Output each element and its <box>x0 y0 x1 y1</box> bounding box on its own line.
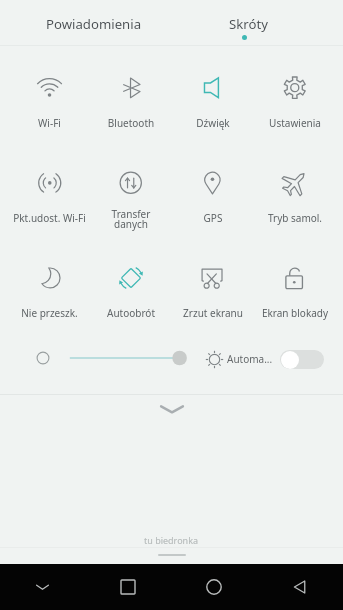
staticText: GPS <box>172 211 254 225</box>
button[interactable]: Zrzut ekranu <box>172 246 254 341</box>
button[interactable]: Nie przeszk. <box>9 246 90 341</box>
button[interactable]: Hide <box>0 564 85 610</box>
button[interactable]: Recents <box>85 564 171 610</box>
button[interactable]: Wi-Fi <box>9 56 90 151</box>
staticText: Zrzut ekranu <box>172 306 254 320</box>
button[interactable]: Pkt.udost. Wi-Fi <box>9 151 90 246</box>
staticText: Pkt.udost. Wi-Fi <box>9 211 90 225</box>
staticText: Ustawienia <box>254 116 336 130</box>
staticText: Bluetooth <box>90 116 172 130</box>
button[interactable]: Skróty <box>162 0 334 45</box>
button[interactable]: Automa... <box>204 344 324 374</box>
staticText: Autoobrót <box>90 306 172 320</box>
staticText: Skróty <box>229 15 268 33</box>
button[interactable]: GPS <box>172 151 254 246</box>
button[interactable]: Bluetooth <box>90 56 172 151</box>
staticText: Nie przeszk. <box>9 306 90 320</box>
button[interactable]: Back <box>257 564 343 610</box>
staticText: Wi-Fi <box>9 116 90 130</box>
button[interactable]: Ustawienia <box>254 56 336 151</box>
staticText: Powiadomienia <box>46 15 142 33</box>
button[interactable]: Brightness <box>30 344 192 372</box>
button[interactable]: Autoobrót <box>90 246 172 341</box>
button[interactable]: Powiadomienia <box>8 0 180 45</box>
button[interactable]: Ekran blokady <box>254 246 336 341</box>
staticText: Dźwięk <box>172 116 254 130</box>
button[interactable]: Tryb samol. <box>254 151 336 246</box>
staticText: tu biedronka <box>144 534 199 546</box>
staticText: Automa... <box>227 352 273 366</box>
staticText: Tryb samol. <box>254 211 336 225</box>
button[interactable]: Transfer danych <box>90 151 172 246</box>
button[interactable]: Dźwięk <box>172 56 254 151</box>
staticText: Transfer danych <box>90 207 172 231</box>
button[interactable]: Expand <box>137 396 207 422</box>
button[interactable]: Home <box>171 564 257 610</box>
staticText: Ekran blokady <box>254 306 336 320</box>
